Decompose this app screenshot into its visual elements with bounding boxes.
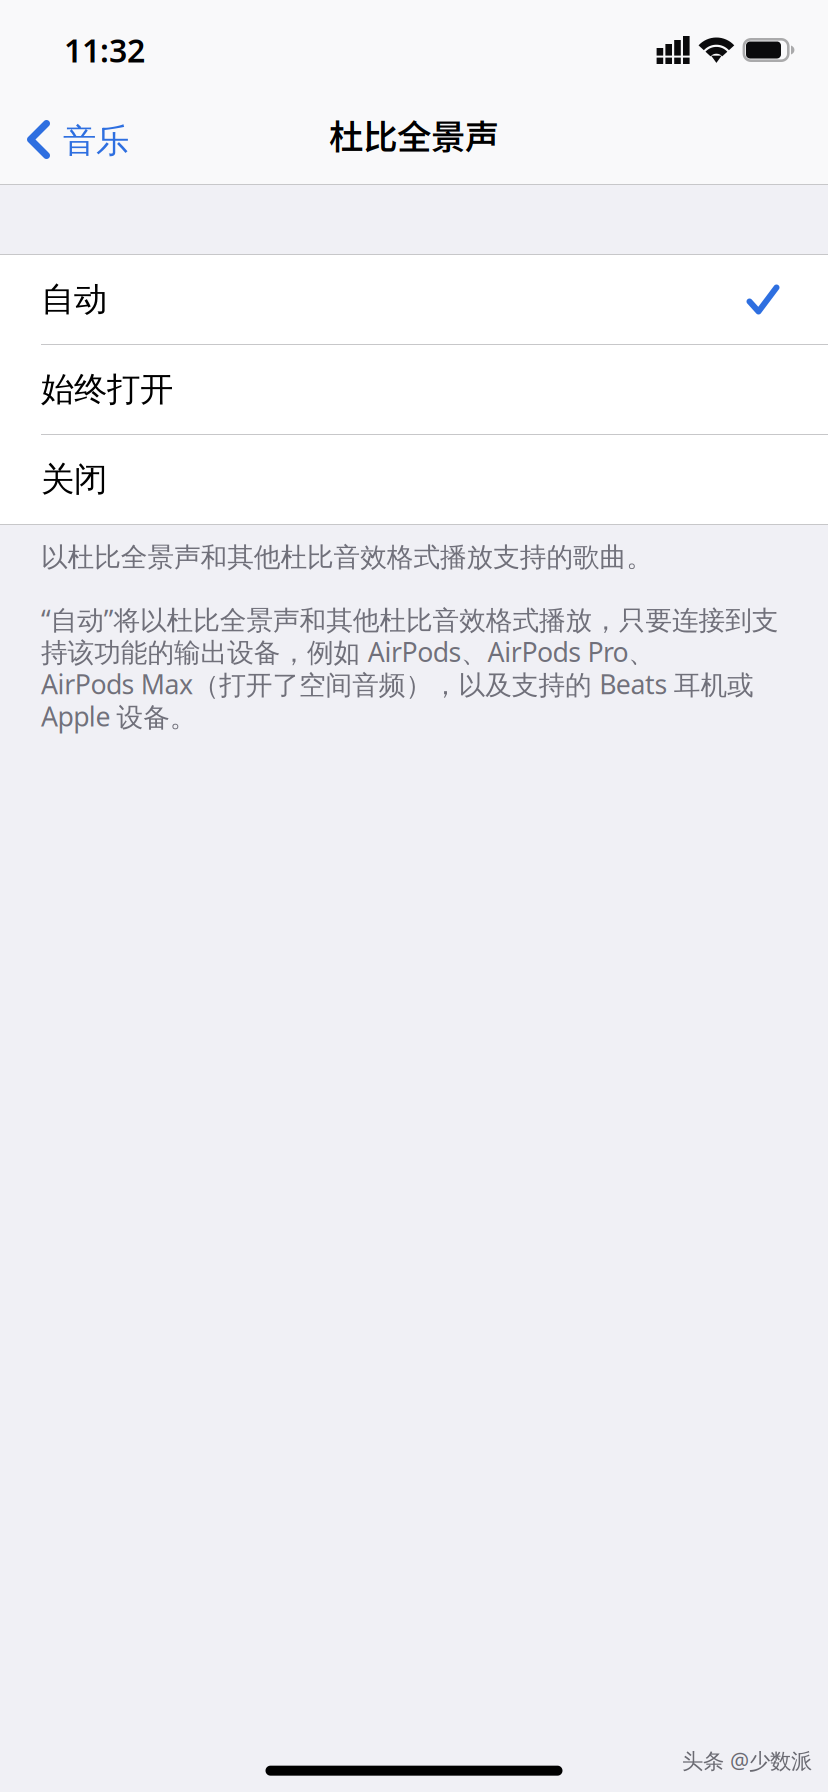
- staticText: 始终打开: [41, 369, 173, 410]
- button[interactable]: 音乐: [0, 92, 147, 184]
- staticText: “自动”将以杜比全景声和其他杜比音效格式播放，只要连接到支 持该功能的输出设备，…: [41, 602, 779, 734]
- staticText: 11:32: [64, 29, 145, 71]
- staticText: 头条 @少数派: [682, 1746, 812, 1775]
- staticText: 音乐: [63, 120, 129, 161]
- staticText: 关闭: [41, 459, 107, 500]
- button[interactable]: 始终打开: [0, 345, 828, 434]
- staticText: 以杜比全景声和其他杜比音效格式播放支持的歌曲。: [41, 541, 653, 574]
- button[interactable]: 自动: [0, 255, 828, 344]
- staticText: 杜比全景声: [329, 110, 499, 159]
- button[interactable]: 关闭: [0, 435, 828, 524]
- staticText: 自动: [41, 279, 107, 320]
